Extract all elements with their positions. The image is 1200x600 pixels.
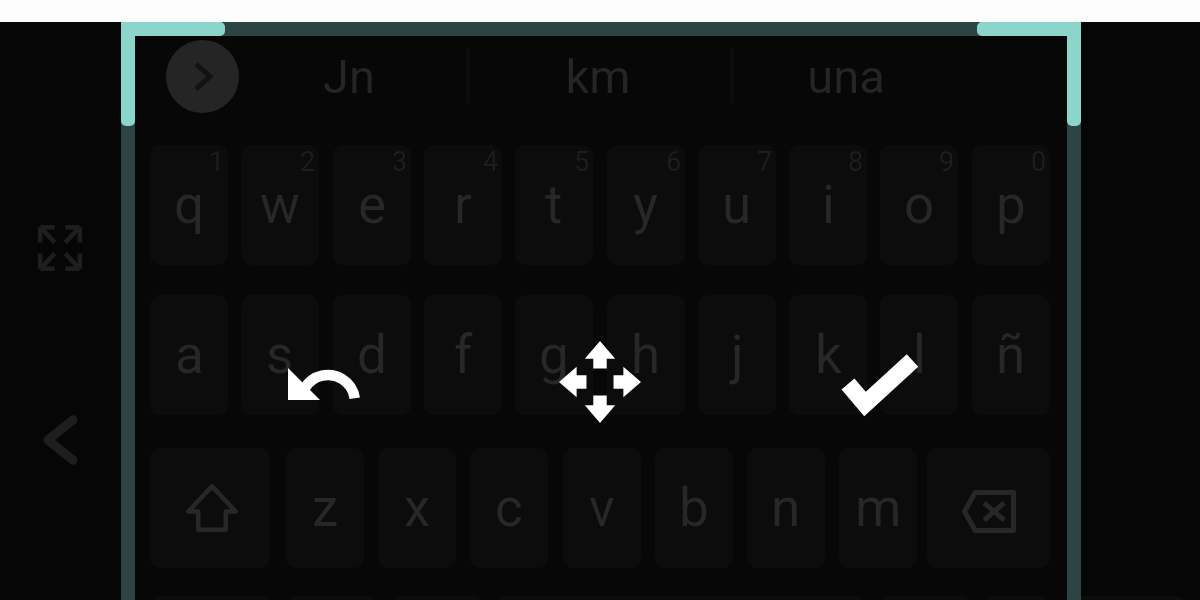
staticText: d (357, 324, 387, 386)
staticText: r (454, 174, 472, 236)
button[interactable]: v (563, 448, 641, 568)
button[interactable]: j (698, 295, 776, 415)
button[interactable]: r (424, 145, 502, 265)
button[interactable]: a (150, 295, 228, 415)
button[interactable]: x (378, 448, 456, 568)
staticText: g (539, 324, 569, 386)
staticText: u (722, 174, 752, 236)
button[interactable]: y (607, 145, 685, 265)
staticText: 8 (848, 146, 864, 178)
button[interactable]: i (789, 145, 867, 265)
staticText: h (631, 324, 661, 386)
button[interactable]: c (470, 448, 548, 568)
staticText: o (904, 174, 935, 236)
staticText: y (633, 174, 659, 236)
button[interactable]: Key (1063, 596, 1186, 600)
button[interactable]: Jn (239, 35, 459, 117)
button[interactable]: km (488, 35, 708, 117)
staticText: 3 (392, 146, 408, 178)
button[interactable]: Confirm (836, 348, 922, 420)
staticText: x (404, 477, 431, 539)
staticText: 7 (757, 146, 773, 178)
button[interactable]: e (333, 145, 411, 265)
staticText: w (260, 174, 300, 236)
button[interactable]: Fullscreen (38, 225, 82, 271)
staticText: f (454, 324, 473, 386)
staticText: s (266, 324, 294, 386)
staticText: j (731, 324, 744, 386)
button[interactable]: d (333, 295, 411, 415)
button[interactable]: Undo (286, 366, 362, 401)
staticText: 9 (939, 146, 955, 178)
button[interactable]: m (839, 448, 917, 568)
staticText: 2 (300, 146, 316, 178)
staticText: 5 (574, 146, 590, 178)
staticText: q (174, 174, 205, 236)
button[interactable]: w (241, 145, 319, 265)
staticText: i (822, 174, 835, 236)
button[interactable]: g (515, 295, 593, 415)
button[interactable]: q (150, 145, 228, 265)
staticText: ñ (996, 324, 1026, 386)
button[interactable]: p (972, 145, 1050, 265)
staticText: c (495, 477, 523, 539)
staticText: v (589, 477, 615, 539)
button[interactable]: n (747, 448, 825, 568)
staticText: k (815, 324, 842, 386)
staticText: km (565, 49, 631, 104)
button[interactable]: o (880, 145, 958, 265)
button[interactable]: l (880, 295, 958, 415)
staticText: t (545, 174, 563, 236)
staticText: m (855, 477, 902, 539)
button[interactable]: z (286, 448, 364, 568)
button[interactable]: More suggestions (166, 40, 239, 113)
staticText: 0 (1031, 146, 1047, 178)
staticText: 1 (209, 146, 225, 178)
button[interactable]: t (515, 145, 593, 265)
button[interactable]: Back (44, 416, 77, 464)
button[interactable]: k (789, 295, 867, 415)
staticText: 4 (483, 146, 499, 178)
staticText: Jn (323, 49, 375, 104)
staticText: 6 (666, 146, 682, 178)
staticText: z (312, 477, 339, 539)
button[interactable]: una (736, 35, 956, 117)
button[interactable]: ñ (972, 295, 1050, 415)
button[interactable]: h (607, 295, 685, 415)
button[interactable]: Move (559, 341, 641, 423)
button[interactable]: f (424, 295, 502, 415)
staticText: b (679, 477, 709, 539)
staticText: e (358, 174, 387, 236)
button[interactable]: Shift (150, 448, 270, 568)
staticText: una (807, 49, 885, 104)
staticText: l (913, 324, 926, 386)
staticText: p (996, 174, 1026, 236)
staticText: a (175, 324, 204, 386)
button[interactable]: s (241, 295, 319, 415)
button[interactable]: b (655, 448, 733, 568)
staticText: n (771, 477, 801, 539)
button[interactable]: Backspace (927, 448, 1050, 568)
button[interactable]: u (698, 145, 776, 265)
